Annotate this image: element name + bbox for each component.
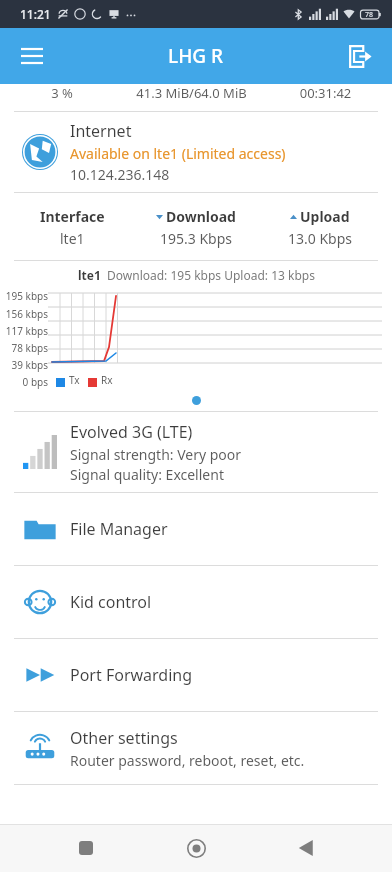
staticText: Download [166,207,236,226]
staticText: Interface [40,207,105,226]
staticText: Available on lte1 (Limited access) [70,144,286,163]
staticText: lte1 [78,267,101,283]
staticText: 195.3 Kbps [160,229,233,248]
button[interactable]: Internet [0,112,392,192]
staticText: Tx [69,373,80,387]
button[interactable]: Home [172,824,220,872]
button[interactable]: Log out [336,32,384,80]
staticText: Router password, reboot, reset, etc. [70,751,305,770]
staticText: 10.124.236.148 [70,165,170,184]
button[interactable]: File Manager [0,493,392,565]
staticText: Port Forwarding [70,664,193,686]
staticText: 156 kbps [0,307,48,321]
staticText: Signal strength: Very poor [70,445,242,464]
staticText: 3 % [14,84,110,102]
button[interactable]: Open navigation menu [8,32,56,80]
staticText: 78 [365,10,374,20]
staticText: Evolved 3G (LTE) [70,421,193,443]
button[interactable]: Kid control [0,566,392,638]
button[interactable]: Back [282,824,330,872]
staticText: 78 kbps [0,341,48,355]
staticText: 13.0 Kbps [288,229,353,248]
staticText: 117 kbps [0,324,48,338]
staticText: 39 kbps [0,358,48,372]
button[interactable]: Evolved 3G (LTE) [0,412,392,492]
staticText: 00:31:42 [273,84,378,102]
staticText: lte1 [60,229,85,248]
staticText: Rx [101,373,113,387]
staticText: Download: 195 kbps Upload: 13 kbps [107,267,315,283]
staticText: Kid control [70,591,152,613]
staticText: 0 bps [0,375,48,389]
staticText: 41.3 MiB/64.0 MiB [110,84,273,102]
button[interactable]: Other settings [0,712,392,784]
staticText: LHG R [168,43,224,69]
staticText: 195 kbps [0,289,48,303]
staticText: File Manager [70,518,168,540]
staticText: Signal quality: Excellent [70,465,224,484]
button[interactable]: Recent apps [62,824,110,872]
button[interactable]: Port Forwarding [0,639,392,711]
staticText: 11:21 [20,6,51,22]
staticText: Internet [70,120,132,142]
staticText: Other settings [70,727,178,749]
staticText: Upload [300,207,350,226]
